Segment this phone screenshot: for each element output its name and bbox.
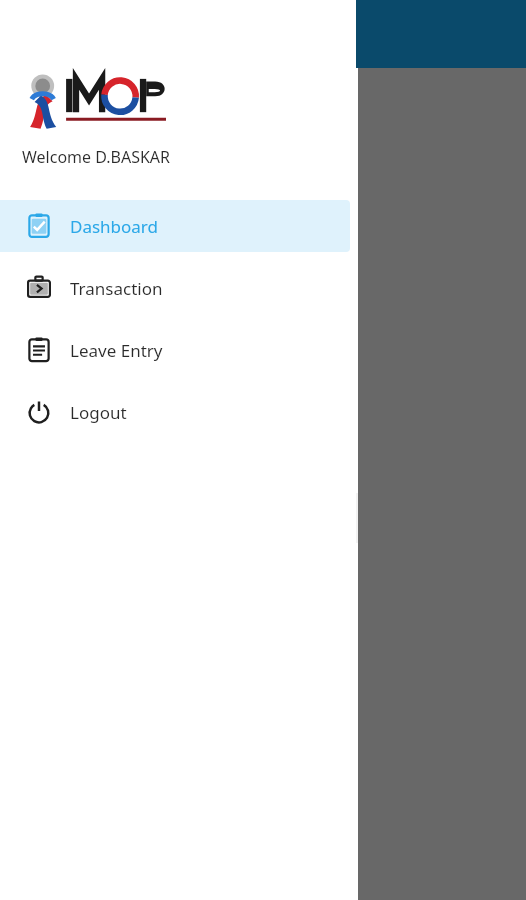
button[interactable]: Leave Entry <box>0 324 350 376</box>
button[interactable] <box>358 0 526 900</box>
staticText: Logout <box>70 401 127 424</box>
staticText: Dashboard <box>70 215 159 238</box>
staticText: Transaction <box>70 277 163 300</box>
button[interactable]: Logout <box>0 386 350 438</box>
staticText: Welcome D.BASKAR <box>22 146 171 168</box>
staticText: Leave Entry <box>70 339 163 362</box>
button[interactable]: Transaction <box>0 262 350 314</box>
button[interactable]: Dashboard <box>0 200 350 252</box>
